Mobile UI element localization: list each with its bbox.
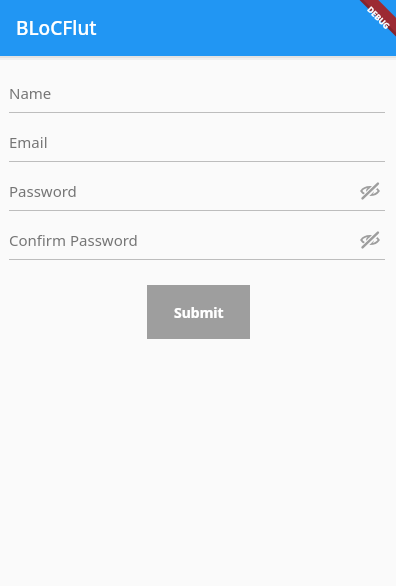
button[interactable]: Submit xyxy=(147,285,250,339)
button[interactable]: Show password xyxy=(357,178,383,204)
button[interactable]: Password xyxy=(0,172,396,210)
button[interactable]: Email xyxy=(0,123,396,161)
button[interactable]: Show confirm password xyxy=(357,227,383,253)
staticText: Email xyxy=(9,132,48,152)
button[interactable]: Name xyxy=(0,74,396,112)
staticText: Name xyxy=(9,83,52,103)
staticText: BLoCFlut xyxy=(16,15,97,41)
staticText: Confirm Password xyxy=(9,230,138,250)
staticText: DEBUG xyxy=(365,4,393,31)
staticText: Submit xyxy=(174,303,224,322)
staticText: Password xyxy=(9,181,77,201)
button[interactable]: Confirm Password xyxy=(0,221,396,259)
